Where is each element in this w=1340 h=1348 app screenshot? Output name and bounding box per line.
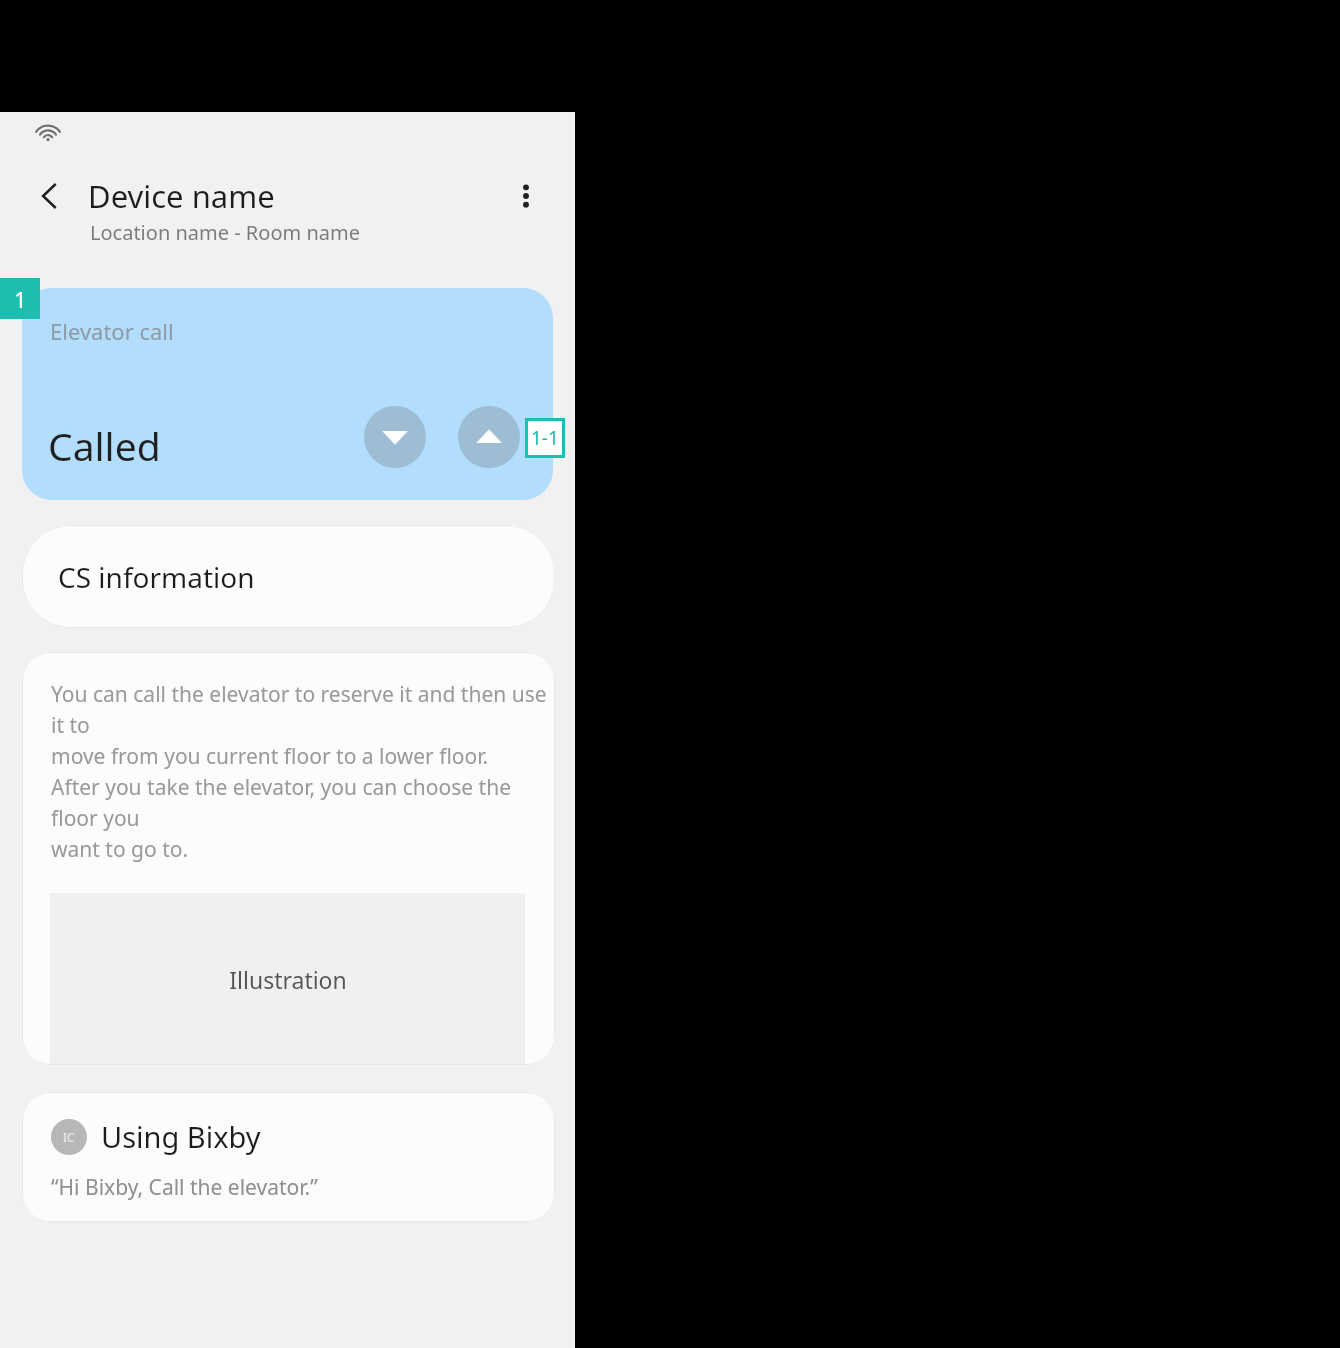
staticText: IC (63, 1129, 75, 1145)
button[interactable]: Call elevator down (364, 406, 426, 468)
button[interactable]: Elevator call (22, 288, 553, 500)
staticText: “Hi Bixby, Call the elevator.” (51, 1173, 318, 1202)
staticText: Device name (88, 175, 275, 217)
button[interactable]: Back (24, 170, 76, 222)
staticText: 1-1 (531, 425, 559, 451)
button[interactable]: Call elevator up (458, 406, 520, 468)
staticText: Called (48, 419, 161, 472)
staticText: Illustration (229, 964, 347, 995)
staticText: CS information (58, 558, 255, 596)
button[interactable]: CS information (22, 525, 555, 628)
button[interactable]: IC (22, 1092, 555, 1222)
staticText: 1 (14, 284, 27, 314)
button[interactable]: More options (500, 170, 552, 222)
staticText: Elevator call (50, 316, 174, 346)
staticText: Using Bixby (101, 1117, 261, 1156)
staticText: You can call the elevator to reserve it … (51, 680, 555, 863)
staticText: Location name - Room name (90, 219, 360, 246)
